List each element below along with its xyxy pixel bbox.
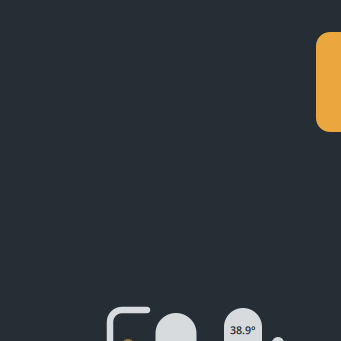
staticText: 38.9° <box>230 323 256 337</box>
button[interactable]: Highlighted card <box>316 32 341 132</box>
button[interactable]: More <box>272 337 284 341</box>
button[interactable]: Temperature 38.9 degrees <box>224 308 262 341</box>
button[interactable]: Card <box>155 313 196 341</box>
